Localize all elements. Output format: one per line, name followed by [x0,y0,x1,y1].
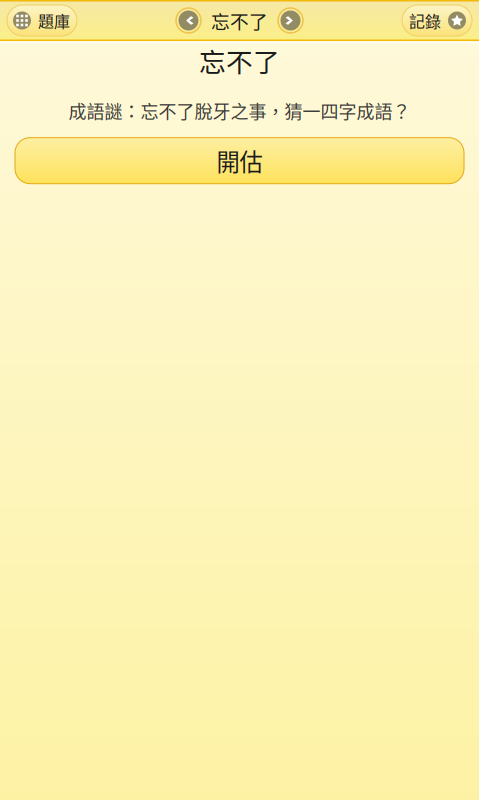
staticText: 成語謎：忘不了脫牙之事，猜一四字成語？ [68,98,410,124]
button[interactable]: Next riddle [278,8,303,33]
staticText: 題庫 [38,9,70,32]
staticText: 記錄 [409,9,441,32]
button[interactable]: 記錄 [402,5,472,36]
button[interactable]: Previous riddle [176,8,201,33]
staticText: 開估 [216,144,262,178]
staticText: 忘不了 [211,7,268,34]
staticText: 忘不了 [199,41,280,80]
button[interactable]: 題庫 [7,5,77,36]
button[interactable]: 開估 [15,138,464,184]
